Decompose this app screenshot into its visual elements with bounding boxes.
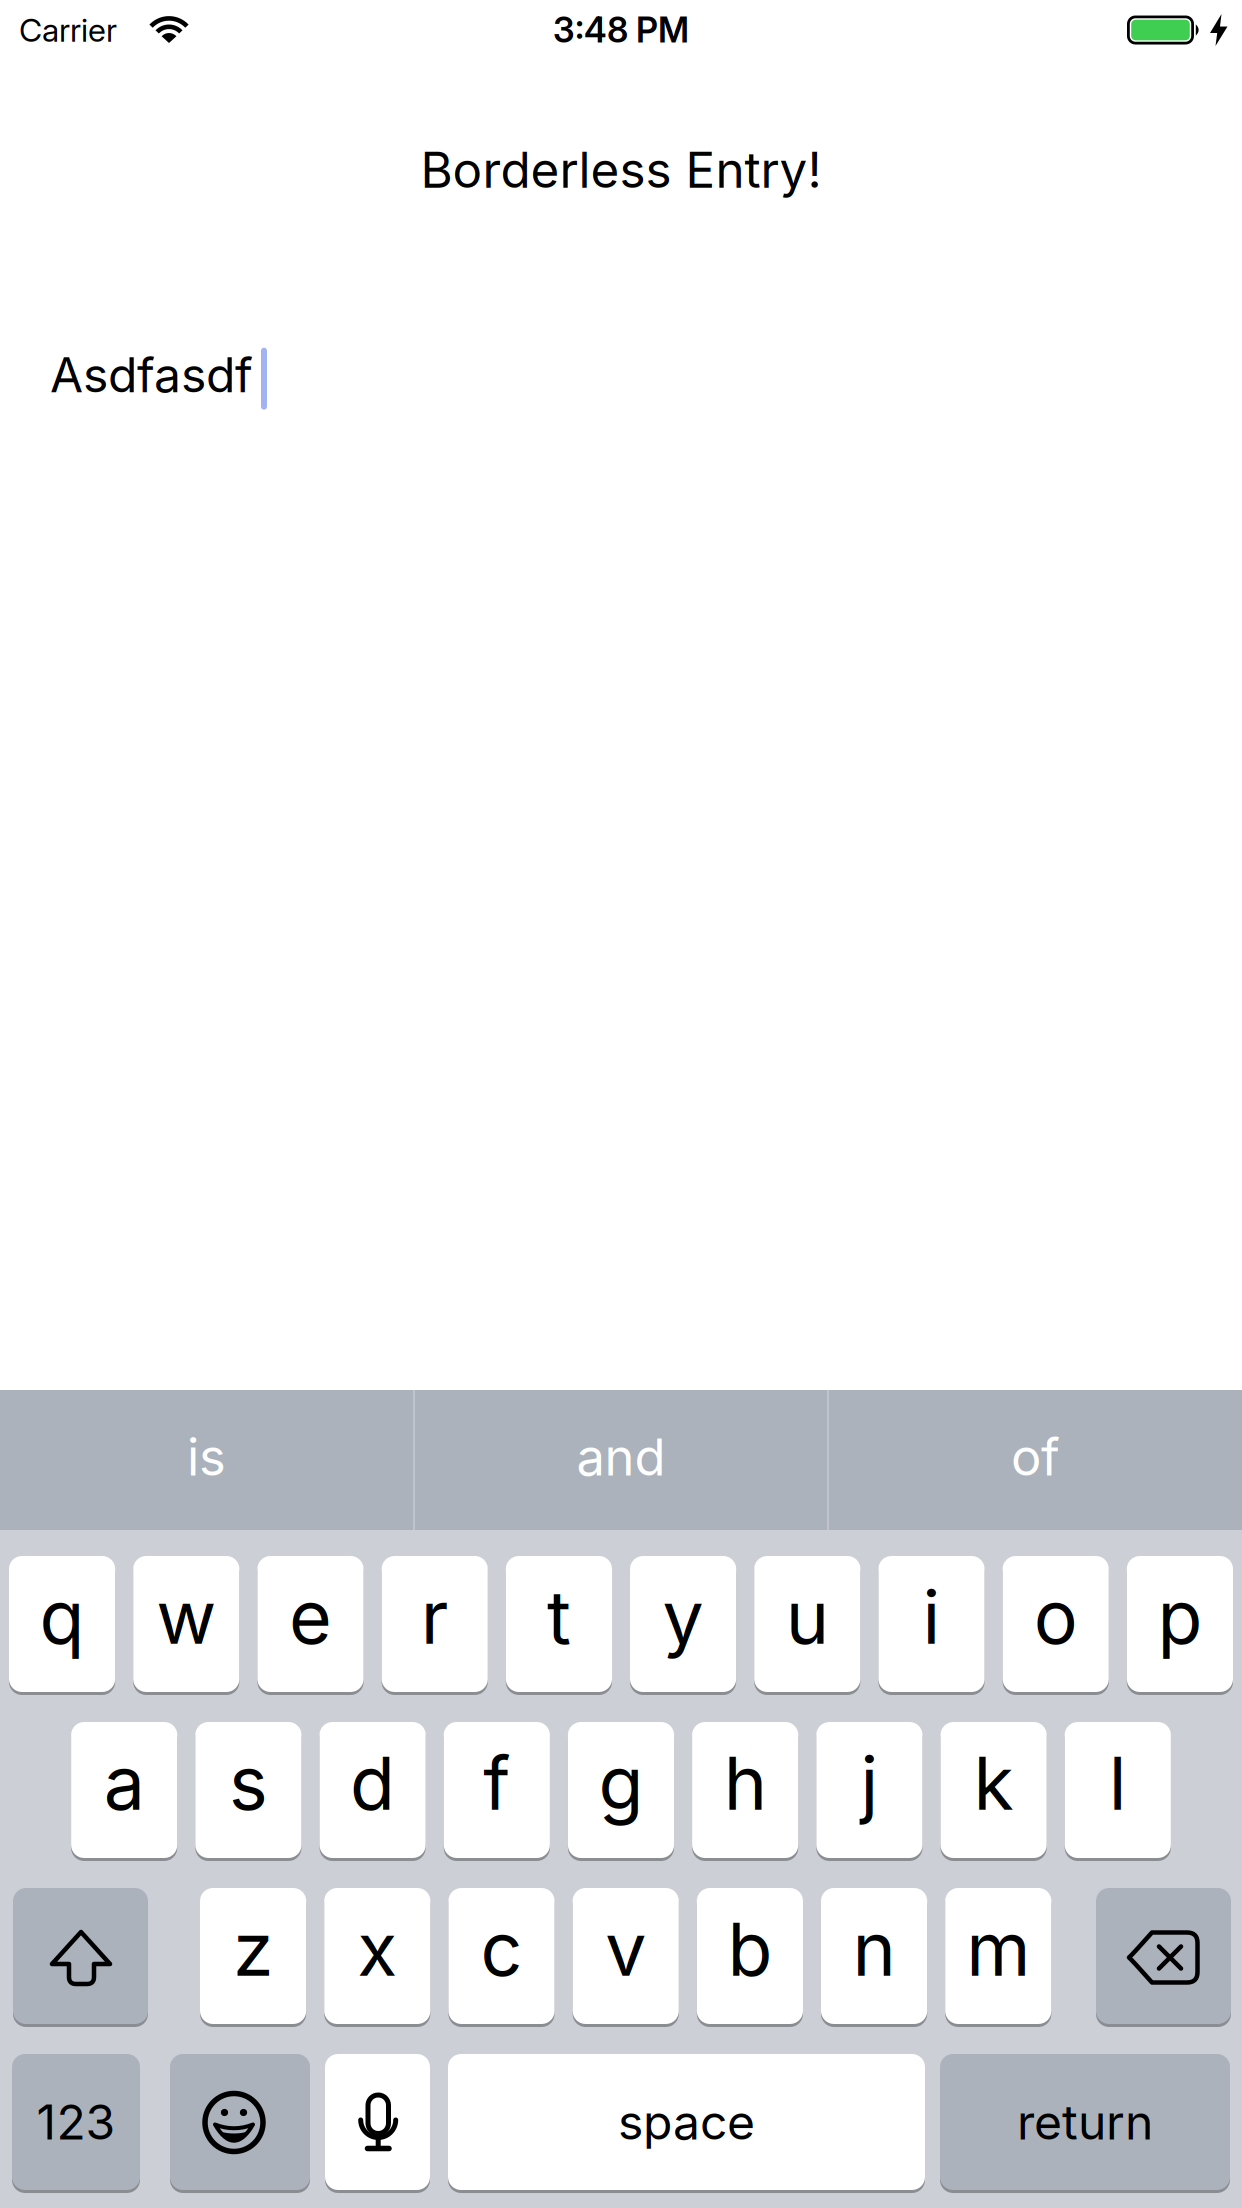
staticText: i [922,1573,940,1661]
button[interactable]: n [821,1888,927,2024]
button[interactable]: i [878,1556,985,1692]
button[interactable]: c [448,1888,555,2024]
button[interactable]: j [816,1722,922,1858]
staticText: j [860,1739,878,1827]
button[interactable]: u [754,1556,860,1692]
button[interactable]: a [71,1722,177,1858]
staticText: p [1157,1573,1202,1661]
button[interactable]: z [200,1888,306,2024]
staticText: return [1017,2093,1153,2151]
button[interactable]: o [1003,1556,1109,1692]
staticText: w [156,1573,216,1661]
staticText: s [229,1739,268,1827]
button[interactable]: s [195,1722,301,1858]
staticText: 3:48 PM [553,9,689,51]
staticText: r [421,1573,449,1661]
staticText: q [40,1573,85,1661]
staticText: l [1109,1739,1127,1827]
staticText: t [547,1573,571,1661]
button[interactable]: and [415,1390,827,1530]
button[interactable]: d [319,1722,426,1858]
button[interactable]: return [940,2054,1230,2190]
button[interactable]: Delete [1096,1888,1231,2024]
button[interactable]: w [133,1556,239,1692]
staticText: n [853,1905,896,1993]
button[interactable]: Shift [13,1888,148,2024]
staticText: Asdfasdf [50,346,253,404]
staticText: d [350,1739,395,1827]
button[interactable]: r [382,1556,488,1692]
staticText: f [483,1739,510,1827]
staticText: m [966,1905,1030,1993]
staticText: z [233,1905,273,1993]
staticText: Borderless Entry! [420,140,821,200]
staticText: 123 [36,2093,115,2151]
button[interactable]: f [444,1722,550,1858]
button[interactable]: v [573,1888,679,2024]
staticText: e [289,1573,332,1661]
button[interactable]: t [506,1556,612,1692]
staticText: y [663,1573,704,1661]
button[interactable]: space [448,2054,925,2190]
staticText: Carrier [19,11,117,49]
button[interactable]: 123 [12,2054,140,2190]
staticText: of [1011,1426,1060,1488]
staticText: o [1034,1573,1078,1661]
staticText: v [605,1905,646,1993]
button[interactable]: e [257,1556,364,1692]
button[interactable]: x [324,1888,430,2024]
staticText: h [724,1739,767,1827]
staticText: u [786,1573,829,1661]
button[interactable]: k [940,1722,1047,1858]
button[interactable]: Text entry [0,344,1242,406]
staticText: x [357,1905,397,1993]
button[interactable]: y [630,1556,736,1692]
staticText: is [187,1426,226,1488]
button[interactable]: h [692,1722,798,1858]
button[interactable]: l [1065,1722,1171,1858]
button[interactable]: b [697,1888,803,2024]
staticText: c [480,1905,522,1993]
button[interactable]: is [0,1390,413,1530]
staticText: a [104,1739,145,1827]
button[interactable]: q [9,1556,115,1692]
button[interactable]: of [829,1390,1242,1530]
staticText: k [974,1739,1014,1827]
staticText: and [576,1426,665,1488]
staticText: g [598,1739,643,1827]
button[interactable]: m [945,1888,1051,2024]
button[interactable]: Dictate [325,2054,430,2190]
button[interactable]: g [568,1722,674,1858]
staticText: b [727,1905,772,1993]
button[interactable]: p [1127,1556,1233,1692]
button[interactable]: Emoji [170,2054,310,2190]
staticText: space [618,2093,755,2151]
